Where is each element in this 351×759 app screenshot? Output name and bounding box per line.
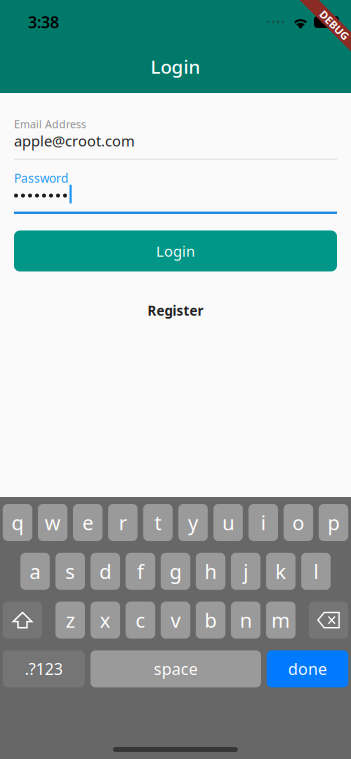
button[interactable]: Login — [14, 230, 337, 271]
button[interactable]: .?123 — [3, 650, 85, 687]
staticText: u — [222, 509, 234, 536]
button[interactable]: q — [3, 504, 32, 541]
staticText: Login — [156, 241, 195, 261]
staticText: done — [288, 658, 327, 679]
button[interactable]: Register — [14, 302, 337, 319]
staticText: p — [327, 509, 339, 536]
staticText: apple@croot.com — [14, 131, 135, 151]
button[interactable]: e — [73, 504, 102, 541]
button[interactable]: t — [143, 504, 173, 541]
button[interactable]: y — [178, 504, 208, 541]
button[interactable]: u — [213, 504, 243, 541]
button[interactable]: x — [91, 602, 120, 639]
staticText: q — [12, 509, 24, 536]
button[interactable]: z — [55, 602, 85, 639]
staticText: Email Address — [14, 117, 86, 131]
staticText: j — [243, 558, 248, 585]
staticText: r — [119, 509, 127, 536]
staticText: 3:38 — [28, 11, 59, 33]
staticText: a — [30, 558, 41, 585]
button[interactable]: h — [196, 553, 225, 590]
staticText: x — [100, 607, 111, 633]
button[interactable]: v — [161, 602, 190, 639]
staticText: c — [135, 607, 145, 633]
staticText: Login — [150, 54, 200, 79]
button[interactable]: done — [267, 650, 348, 687]
staticText: m — [271, 607, 290, 633]
button[interactable]: d — [90, 553, 120, 590]
staticText: n — [240, 607, 252, 633]
staticText: v — [170, 607, 180, 633]
staticText: l — [313, 558, 318, 585]
button[interactable]: p — [319, 504, 348, 541]
button[interactable]: m — [266, 602, 296, 639]
staticText: y — [188, 509, 198, 536]
button[interactable]: space — [90, 650, 261, 687]
button[interactable]: j — [231, 553, 260, 590]
button[interactable]: g — [161, 553, 190, 590]
staticText: d — [99, 558, 111, 585]
staticText: s — [65, 558, 75, 585]
button[interactable]: f — [126, 553, 155, 590]
button[interactable]: r — [108, 504, 138, 541]
button[interactable]: b — [196, 602, 225, 639]
staticText: k — [275, 558, 286, 585]
staticText: Register — [147, 302, 203, 319]
staticText: Password — [14, 170, 68, 186]
staticText: o — [292, 509, 304, 536]
button[interactable]: c — [126, 602, 155, 639]
button[interactable]: s — [55, 553, 85, 590]
button[interactable]: w — [38, 504, 67, 541]
button[interactable]: l — [301, 553, 331, 590]
button[interactable]: n — [231, 602, 260, 639]
staticText: space — [154, 658, 198, 679]
staticText: e — [82, 509, 93, 536]
staticText: w — [45, 509, 61, 536]
staticText: g — [169, 558, 181, 585]
button[interactable]: o — [284, 504, 313, 541]
staticText: t — [154, 509, 161, 536]
staticText: b — [205, 607, 217, 633]
staticText: f — [137, 558, 144, 585]
staticText: DEBUG — [316, 18, 351, 32]
staticText: i — [261, 509, 266, 536]
button[interactable]: k — [266, 553, 295, 590]
button[interactable]: Shift — [3, 602, 42, 639]
staticText: z — [66, 607, 75, 633]
button[interactable]: i — [248, 504, 278, 541]
button[interactable]: Backspace — [309, 602, 348, 639]
button[interactable]: a — [20, 553, 50, 590]
staticText: h — [205, 558, 217, 585]
staticText: .?123 — [25, 658, 63, 679]
